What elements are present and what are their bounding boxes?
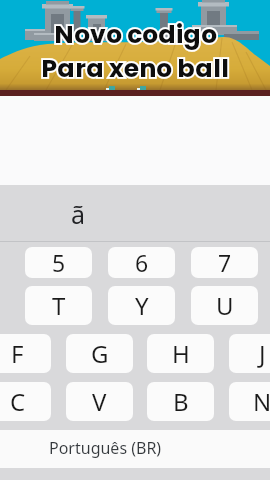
staticText: V bbox=[92, 385, 107, 418]
staticText: ã bbox=[71, 197, 86, 231]
staticText: U bbox=[216, 289, 234, 322]
staticText: T bbox=[52, 289, 66, 322]
button[interactable]: Y bbox=[108, 286, 175, 325]
button[interactable]: 5 bbox=[25, 247, 92, 278]
button[interactable]: J bbox=[229, 334, 270, 373]
button[interactable]: F bbox=[0, 334, 51, 373]
button[interactable]: Português (BR) bbox=[0, 430, 270, 468]
staticText: 5 bbox=[52, 247, 66, 278]
button[interactable]: U bbox=[191, 286, 258, 325]
button[interactable]: C bbox=[0, 382, 51, 421]
button[interactable]: 7 bbox=[191, 247, 258, 278]
staticText: J bbox=[259, 337, 266, 370]
staticText: G bbox=[91, 337, 109, 370]
staticText: Português (BR) bbox=[49, 437, 162, 459]
button[interactable]: H bbox=[147, 334, 214, 373]
staticText: H bbox=[172, 337, 190, 370]
button[interactable]: T bbox=[25, 286, 92, 325]
button[interactable]: V bbox=[66, 382, 133, 421]
staticText: 7 bbox=[218, 247, 232, 278]
staticText: B bbox=[173, 385, 189, 418]
button[interactable]: ã bbox=[0, 185, 270, 241]
button[interactable]: 6 bbox=[108, 247, 175, 278]
button[interactable]: B bbox=[147, 382, 214, 421]
button[interactable]: N bbox=[229, 382, 270, 421]
button[interactable]: G bbox=[66, 334, 133, 373]
staticText: N bbox=[253, 385, 270, 418]
staticText: F bbox=[11, 337, 24, 370]
staticText: 6 bbox=[135, 247, 149, 278]
staticText: C bbox=[10, 385, 26, 418]
staticText: Y bbox=[135, 289, 149, 322]
